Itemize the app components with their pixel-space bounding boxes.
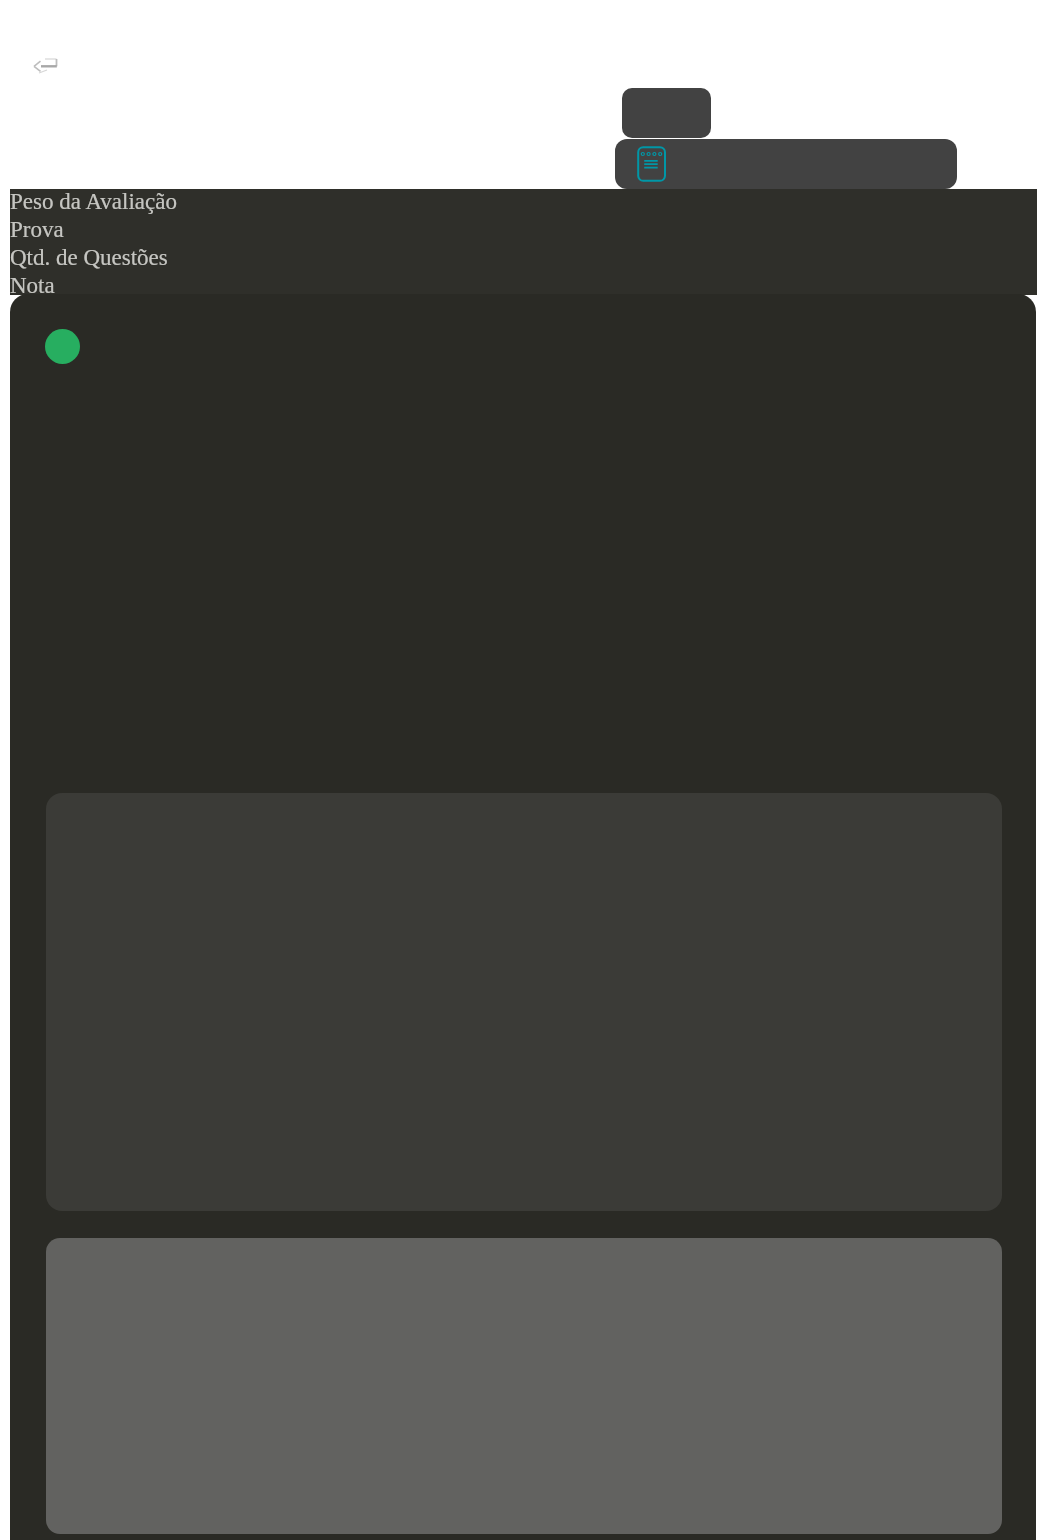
button[interactable] (45, 329, 80, 364)
button[interactable] (615, 139, 957, 189)
button[interactable] (31, 53, 59, 77)
button[interactable] (622, 88, 711, 138)
staticText: Peso da Avaliação Prova Qtd. de Questões… (10, 189, 177, 295)
